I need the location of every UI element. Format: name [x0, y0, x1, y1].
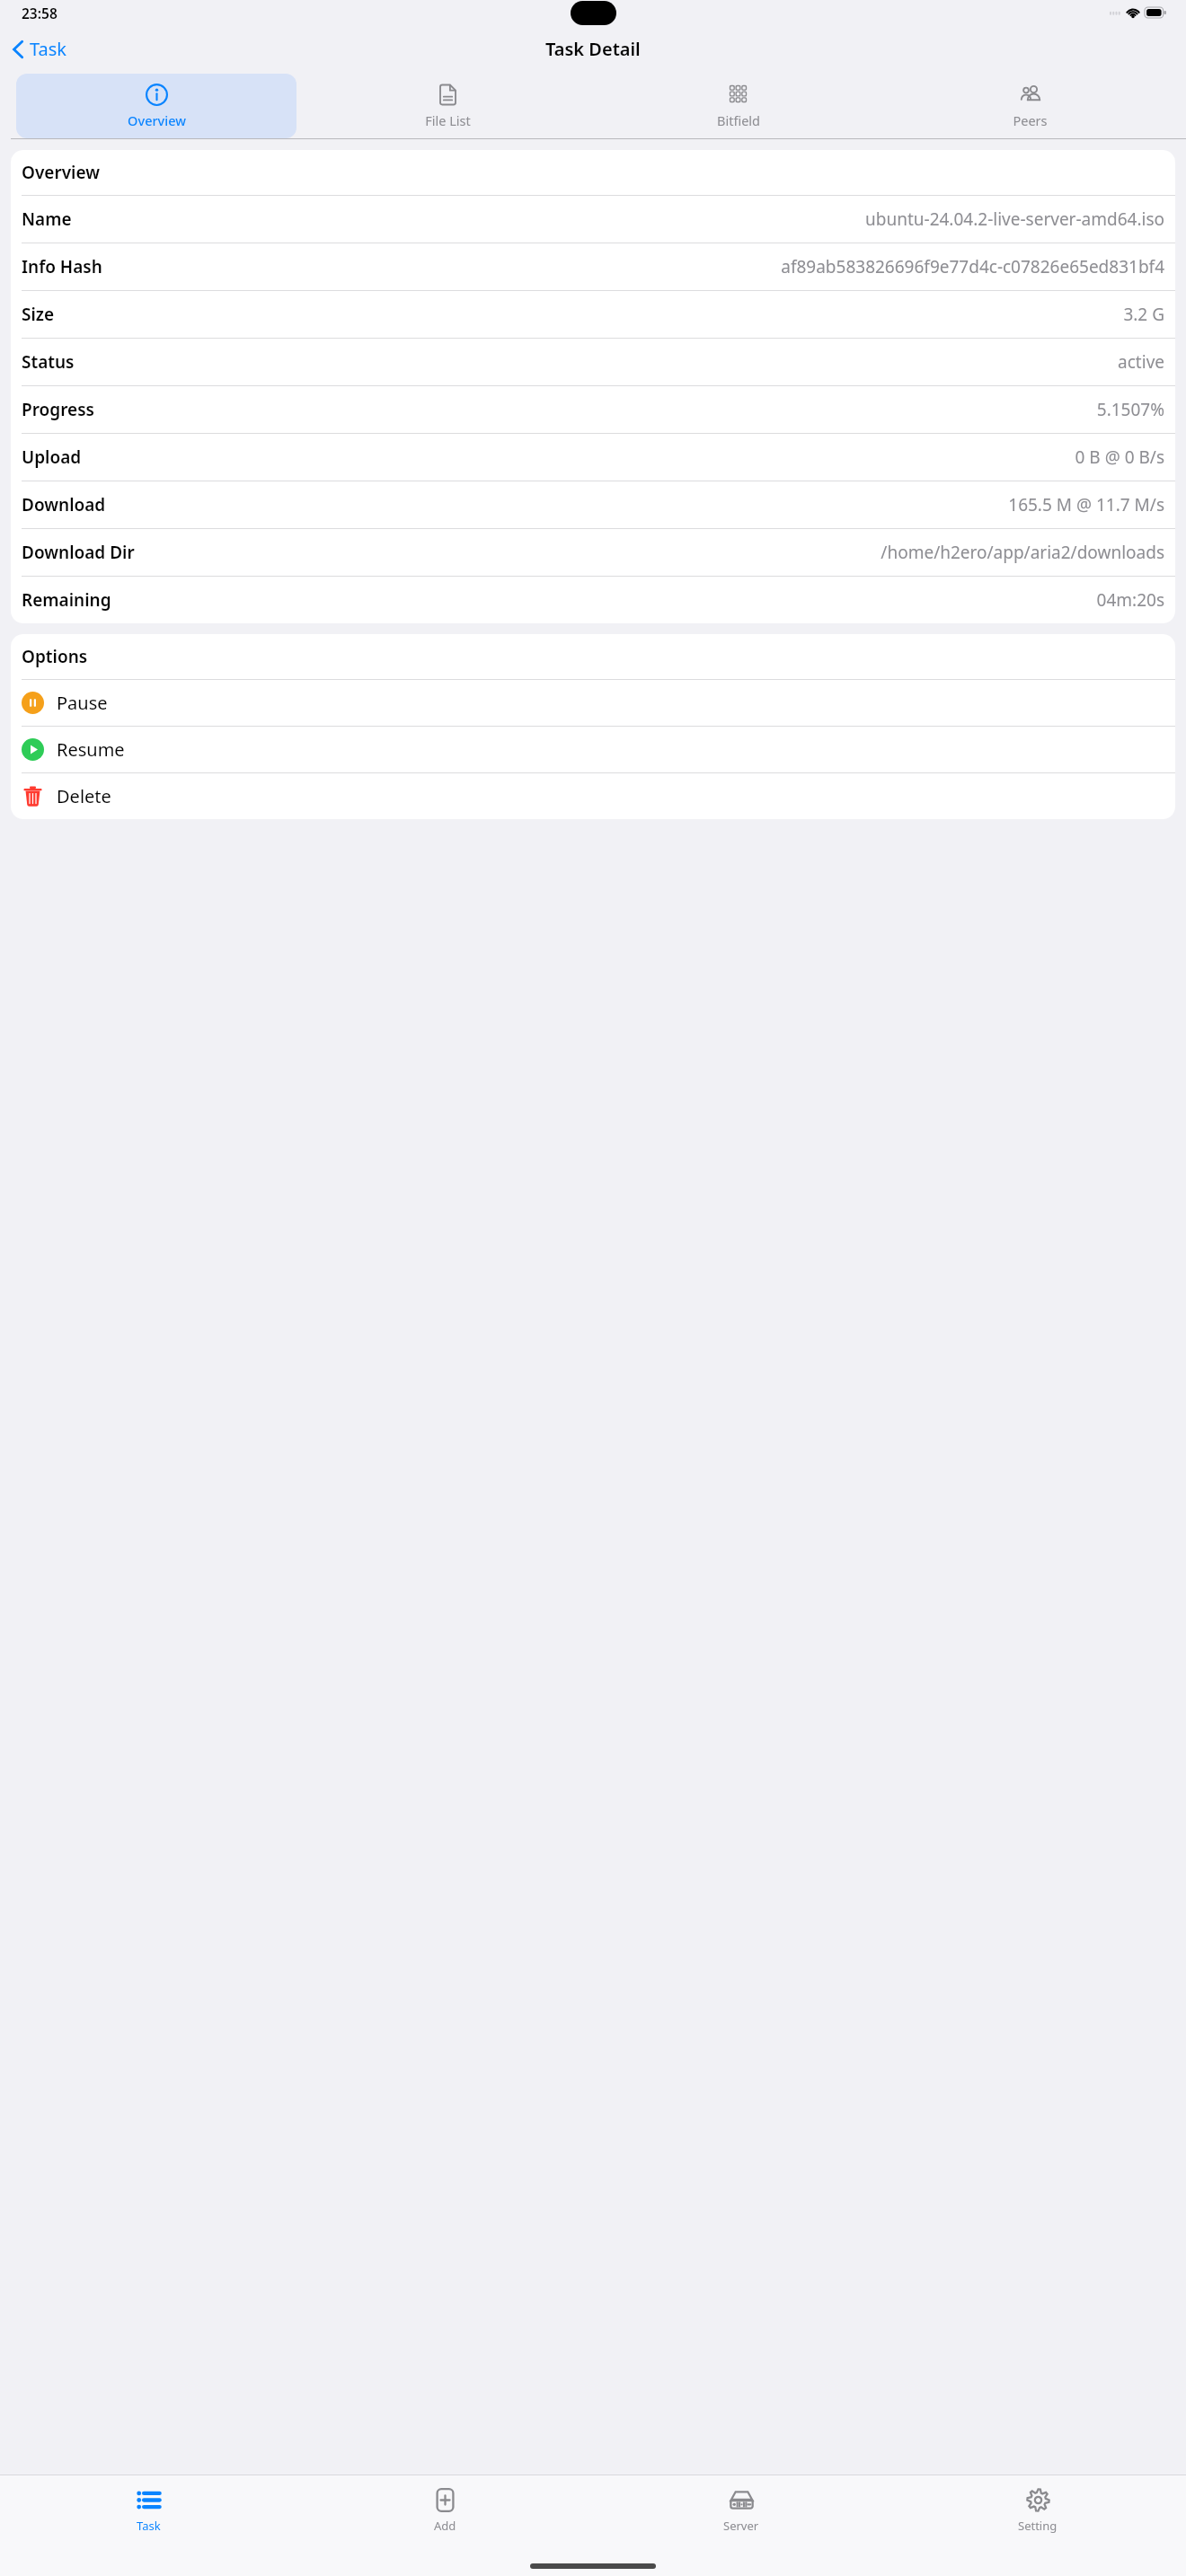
- staticText: 3.2 G: [144, 303, 1164, 326]
- staticText: active: [144, 350, 1164, 374]
- button[interactable]: Pause: [11, 680, 1175, 726]
- staticText: Size: [22, 303, 144, 326]
- button[interactable]: Setting: [889, 2475, 1186, 2545]
- staticText: ubuntu-24.04.2-live-server-amd64.iso: [144, 207, 1164, 231]
- button[interactable]: Overview: [16, 74, 296, 138]
- staticText: Overview: [128, 111, 186, 129]
- staticText: Download: [22, 493, 144, 516]
- staticText: 04m:20s: [144, 588, 1164, 612]
- button[interactable]: Add: [296, 2475, 593, 2545]
- staticText: Remaining: [22, 588, 144, 612]
- staticText: af89ab583826696f9e77d4c-c07826e65ed831bf…: [144, 255, 1164, 278]
- staticText: 165.5 M @ 11.7 M/s: [144, 493, 1164, 516]
- staticText: Server: [723, 2518, 759, 2534]
- staticText: Options: [22, 645, 88, 668]
- staticText: Upload: [22, 446, 144, 469]
- staticText: 0 B @ 0 B/s: [144, 446, 1164, 469]
- staticText: 5.1507%: [144, 398, 1164, 421]
- staticText: Setting: [1018, 2518, 1058, 2534]
- button[interactable]: Bitfield: [598, 74, 879, 138]
- staticText: Bitfield: [717, 111, 760, 129]
- staticText: Progress: [22, 398, 144, 421]
- staticText: Task Detail: [545, 37, 641, 61]
- button[interactable]: Download: [11, 481, 1175, 528]
- button[interactable]: Resume: [11, 727, 1175, 772]
- staticText: File List: [425, 111, 471, 129]
- button[interactable]: Info Hash: [11, 243, 1175, 290]
- button[interactable]: Task: [0, 2475, 296, 2545]
- button[interactable]: Upload: [11, 434, 1175, 481]
- button[interactable]: Delete: [11, 773, 1175, 819]
- button[interactable]: Server: [593, 2475, 889, 2545]
- button[interactable]: Remaining: [11, 577, 1175, 623]
- staticText: Task: [137, 2518, 161, 2534]
- staticText: Overview: [22, 161, 100, 184]
- staticText: Delete: [57, 784, 111, 808]
- button[interactable]: Status: [11, 339, 1175, 385]
- staticText: Status: [22, 350, 144, 374]
- staticText: Peers: [1013, 111, 1048, 129]
- staticText: Resume: [57, 737, 125, 762]
- staticText: Task: [30, 37, 66, 61]
- staticText: Pause: [57, 691, 108, 715]
- staticText: Name: [22, 207, 144, 231]
- button[interactable]: Peers: [889, 74, 1170, 138]
- staticText: 23:58: [22, 4, 58, 22]
- staticText: Add: [434, 2518, 456, 2534]
- button[interactable]: Task: [7, 33, 72, 65]
- button[interactable]: File List: [307, 74, 588, 138]
- button[interactable]: Size: [11, 291, 1175, 338]
- button[interactable]: Name: [11, 196, 1175, 243]
- button[interactable]: Progress: [11, 386, 1175, 433]
- staticText: Info Hash: [22, 255, 144, 278]
- staticText: /home/h2ero/app/aria2/downloads: [144, 541, 1164, 564]
- staticText: Download Dir: [22, 541, 144, 564]
- button[interactable]: Download Dir: [11, 529, 1175, 576]
